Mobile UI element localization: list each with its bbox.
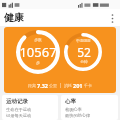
staticText: 中高强度 — [76, 39, 91, 44]
staticText: 距离 — [28, 83, 36, 88]
staticText: 分钟 — [80, 60, 88, 65]
button[interactable]: 步数 — [4, 27, 116, 93]
button[interactable]: More options — [104, 10, 120, 26]
button[interactable]: 心率 — [61, 95, 118, 120]
staticText: 7.32 — [37, 82, 48, 89]
staticText: 心率 — [65, 98, 76, 105]
staticText: 步数 — [34, 38, 42, 43]
staticText: 10567 — [19, 43, 57, 61]
staticText: 52 — [77, 44, 91, 60]
button[interactable]: 运动记录 — [2, 95, 58, 120]
staticText: 201 — [73, 82, 83, 89]
staticText: 公里 — [49, 83, 57, 88]
staticText: 生命在于运动 — [6, 107, 32, 112]
staticText: 记录每天运动 — [6, 113, 32, 118]
staticText: 步 — [36, 61, 40, 66]
staticText: 检测心率 — [65, 107, 82, 112]
staticText: 运动记录 — [6, 98, 28, 105]
staticText: 千卡 — [84, 83, 92, 88]
staticText: 健康 — [4, 11, 24, 24]
button[interactable]: 步数 — [16, 30, 60, 74]
staticText: 消耗 — [64, 83, 72, 88]
staticText: 最快的助心律 — [65, 113, 91, 118]
button[interactable]: 中高强度 — [64, 33, 102, 71]
